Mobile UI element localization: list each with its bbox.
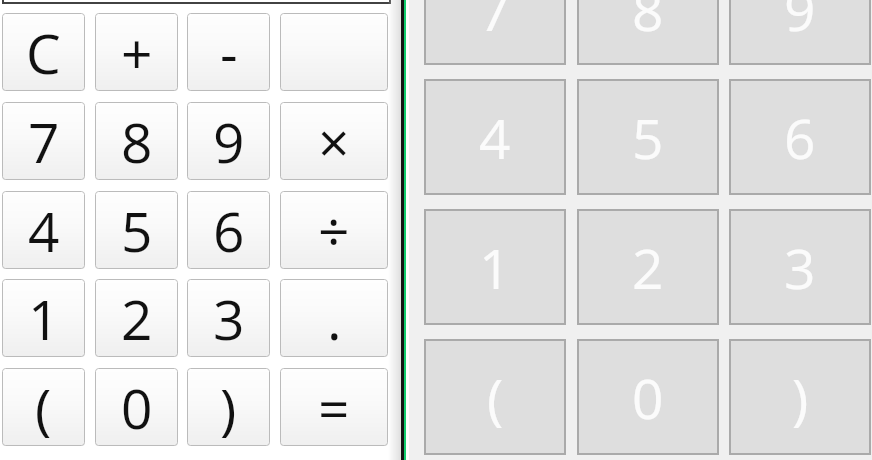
button[interactable]: ÷ (280, 191, 388, 269)
staticText: × (318, 104, 350, 179)
button[interactable]: 6 (729, 79, 871, 195)
button[interactable] (280, 13, 388, 91)
staticText: 2 (632, 230, 664, 305)
button[interactable]: 8 (577, 0, 719, 65)
button[interactable]: = (280, 368, 388, 446)
staticText: 3 (784, 230, 816, 305)
button[interactable]: 2 (95, 279, 178, 357)
button[interactable]: ( (424, 339, 566, 455)
staticText: ) (792, 360, 809, 435)
staticText: 5 (121, 193, 153, 268)
button[interactable]: 2 (577, 209, 719, 325)
staticText: ) (220, 370, 237, 445)
button[interactable]: 9 (729, 0, 871, 65)
staticText: 9 (213, 104, 245, 179)
staticText: 0 (121, 370, 153, 445)
staticText: ÷ (318, 193, 350, 268)
button[interactable]: 7 (2, 102, 85, 180)
button[interactable]: + (95, 13, 178, 91)
button[interactable]: ( (2, 368, 85, 446)
button[interactable]: 0 (95, 368, 178, 446)
staticText: 5 (632, 100, 664, 175)
button[interactable]: . (280, 279, 388, 357)
staticText: 6 (213, 193, 245, 268)
staticText: 6 (784, 100, 816, 175)
button[interactable]: 5 (577, 79, 719, 195)
button[interactable]: - (187, 13, 270, 91)
staticText: 7 (479, 0, 511, 47)
button[interactable]: C (2, 13, 85, 91)
staticText: 8 (632, 0, 664, 47)
staticText: 1 (479, 230, 511, 305)
button[interactable]: ) (729, 339, 871, 455)
staticText: 1 (28, 281, 60, 356)
button[interactable]: 4 (2, 191, 85, 269)
button[interactable]: ) (187, 368, 270, 446)
staticText: 0 (632, 360, 664, 435)
staticText: 8 (121, 104, 153, 179)
staticText: = (318, 370, 350, 445)
staticText: 3 (213, 281, 245, 356)
staticText: 7 (28, 104, 60, 179)
button[interactable]: 8 (95, 102, 178, 180)
button[interactable]: 4 (424, 79, 566, 195)
staticText: + (121, 15, 153, 90)
button[interactable]: 5 (95, 191, 178, 269)
button[interactable]: 1 (424, 209, 566, 325)
staticText: ( (35, 370, 52, 445)
button[interactable]: × (280, 102, 388, 180)
staticText: - (220, 15, 238, 90)
button[interactable]: 1 (2, 279, 85, 357)
button[interactable]: 6 (187, 191, 270, 269)
staticText: ( (487, 360, 504, 435)
staticText: 4 (479, 100, 511, 175)
button[interactable]: 9 (187, 102, 270, 180)
staticText: 4 (28, 193, 60, 268)
staticText: 2 (121, 281, 153, 356)
staticText: C (26, 15, 61, 90)
staticText: 9 (784, 0, 816, 47)
button[interactable]: 7 (424, 0, 566, 65)
button[interactable]: 3 (729, 209, 871, 325)
button[interactable]: 0 (577, 339, 719, 455)
button[interactable]: 3 (187, 279, 270, 357)
staticText: . (327, 281, 342, 356)
